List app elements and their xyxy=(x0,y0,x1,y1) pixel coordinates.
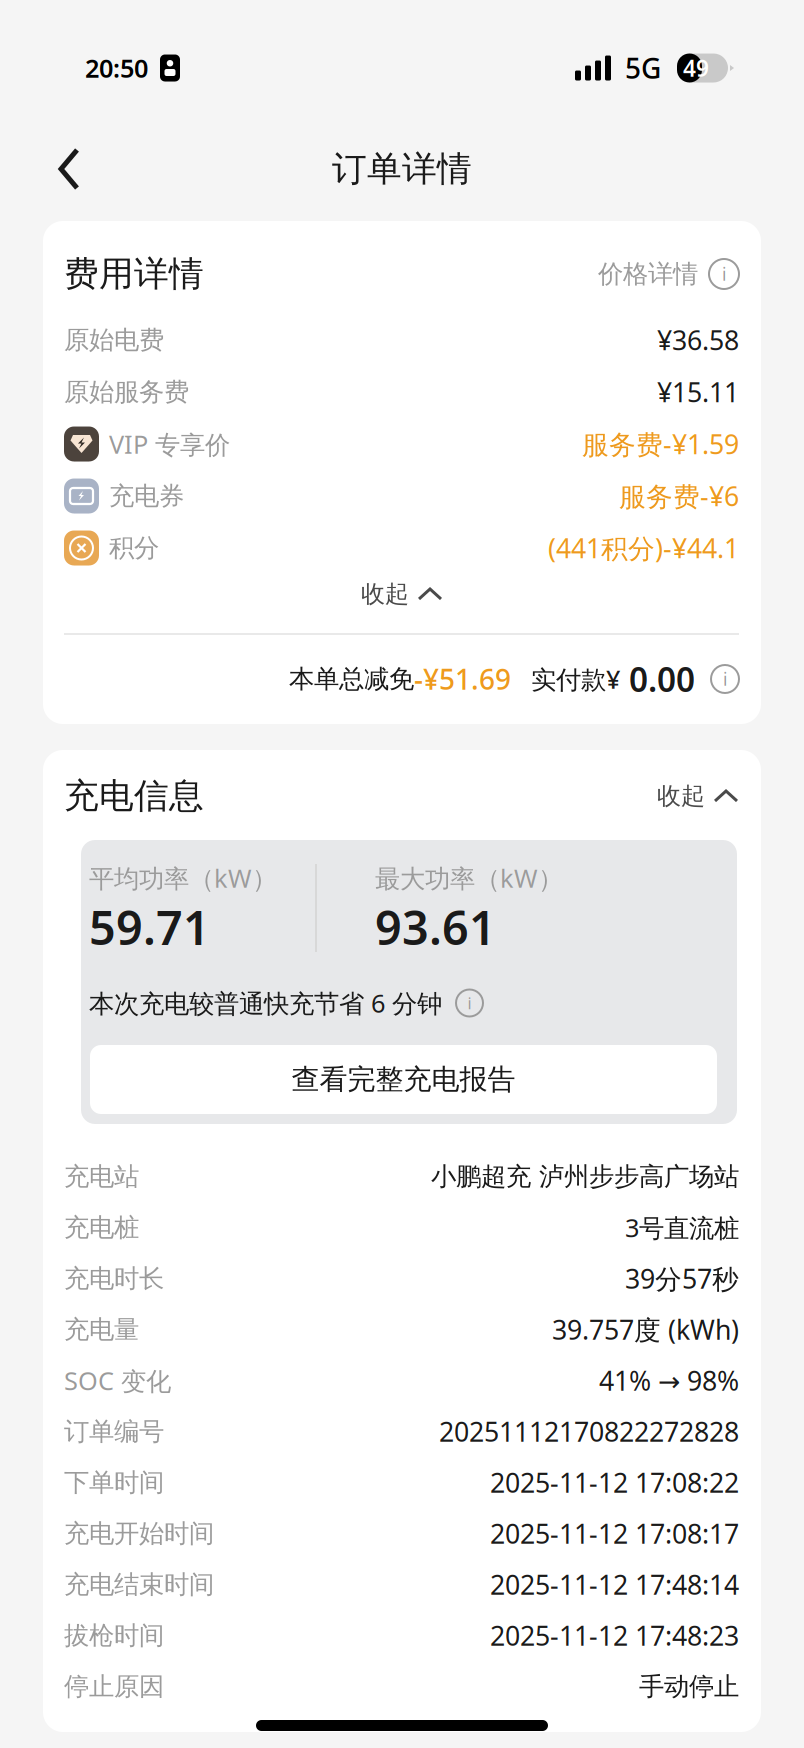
staticText: 3号直流桩 xyxy=(625,1211,739,1244)
staticText: 2025-11-12 17:08:17 xyxy=(490,1516,739,1551)
staticText: 93.61 xyxy=(375,896,496,958)
staticText: 充电桩 xyxy=(64,1212,139,1243)
staticText: SOC 变化 xyxy=(64,1364,171,1397)
staticText: 最大功率（kW） xyxy=(375,861,563,895)
staticText: 服务费-¥6 xyxy=(619,478,739,514)
staticText: 20251112170822272828 xyxy=(439,1414,739,1449)
staticText: 查看完整充电报告 xyxy=(291,1062,515,1097)
staticText: 价格详情 xyxy=(598,258,698,289)
staticText: 本次充电较普通快充节省 6 分钟 xyxy=(89,986,442,1020)
staticText: 下单时间 xyxy=(64,1467,164,1498)
staticText: 充电时长 xyxy=(64,1263,164,1294)
button[interactable]: 返回 xyxy=(42,133,100,205)
staticText: 39分57秒 xyxy=(625,1261,739,1296)
staticText: 2025-11-12 17:48:23 xyxy=(490,1618,739,1653)
staticText: 停止原因 xyxy=(64,1671,164,1702)
staticText: 本单总减免 xyxy=(289,663,414,694)
staticText: 充电券 xyxy=(109,480,184,511)
staticText: 收起 xyxy=(657,781,705,811)
staticText: VIP 专享价 xyxy=(109,427,230,461)
staticText: ¥36.58 xyxy=(657,322,739,358)
staticText: 2025-11-12 17:48:14 xyxy=(490,1567,739,1602)
staticText: 手动停止 xyxy=(639,1671,739,1702)
staticText: 积分 xyxy=(109,532,159,563)
staticText: 充电结束时间 xyxy=(64,1569,214,1600)
staticText: i xyxy=(722,262,726,285)
staticText: 2025-11-12 17:08:22 xyxy=(490,1465,739,1500)
button[interactable]: 收起 xyxy=(657,781,739,811)
staticText: 原始服务费 xyxy=(64,376,189,407)
staticText: 订单详情 xyxy=(332,148,472,190)
staticText: 费用详情 xyxy=(64,253,204,295)
staticText: 5G xyxy=(625,49,661,87)
staticText: 订单编号 xyxy=(64,1416,164,1447)
staticText: 49 xyxy=(683,53,709,83)
staticText: 充电开始时间 xyxy=(64,1518,214,1549)
staticText: 充电信息 xyxy=(64,775,204,817)
staticText: i xyxy=(723,667,727,690)
staticText: 原始电费 xyxy=(64,324,164,355)
button[interactable]: 收起 xyxy=(43,574,761,614)
staticText: (441积分)-¥44.1 xyxy=(548,530,739,566)
button[interactable]: 查看完整充电报告 xyxy=(90,1045,717,1114)
staticText: 平均功率（kW） xyxy=(89,861,277,895)
staticText: i xyxy=(467,992,471,1014)
staticText: 充电站 xyxy=(64,1161,139,1192)
staticText: 20:50 xyxy=(85,51,148,85)
staticText: 59.71 xyxy=(89,896,210,958)
staticText: 小鹏超充 泸州步步高广场站 xyxy=(431,1161,739,1192)
staticText: 实付款¥ xyxy=(531,662,620,696)
staticText: 充电量 xyxy=(64,1314,139,1345)
staticText: -¥51.69 xyxy=(414,660,511,698)
staticText: 拔枪时间 xyxy=(64,1620,164,1651)
staticText: 41% → 98% xyxy=(599,1363,739,1398)
staticText: 服务费-¥1.59 xyxy=(582,426,739,462)
staticText: 收起 xyxy=(361,579,409,609)
staticText: ¥15.11 xyxy=(657,374,739,410)
button[interactable]: 价格详情 xyxy=(598,258,739,289)
staticText: 0.00 xyxy=(629,657,695,701)
staticText: 39.757度 (kWh) xyxy=(552,1312,739,1347)
